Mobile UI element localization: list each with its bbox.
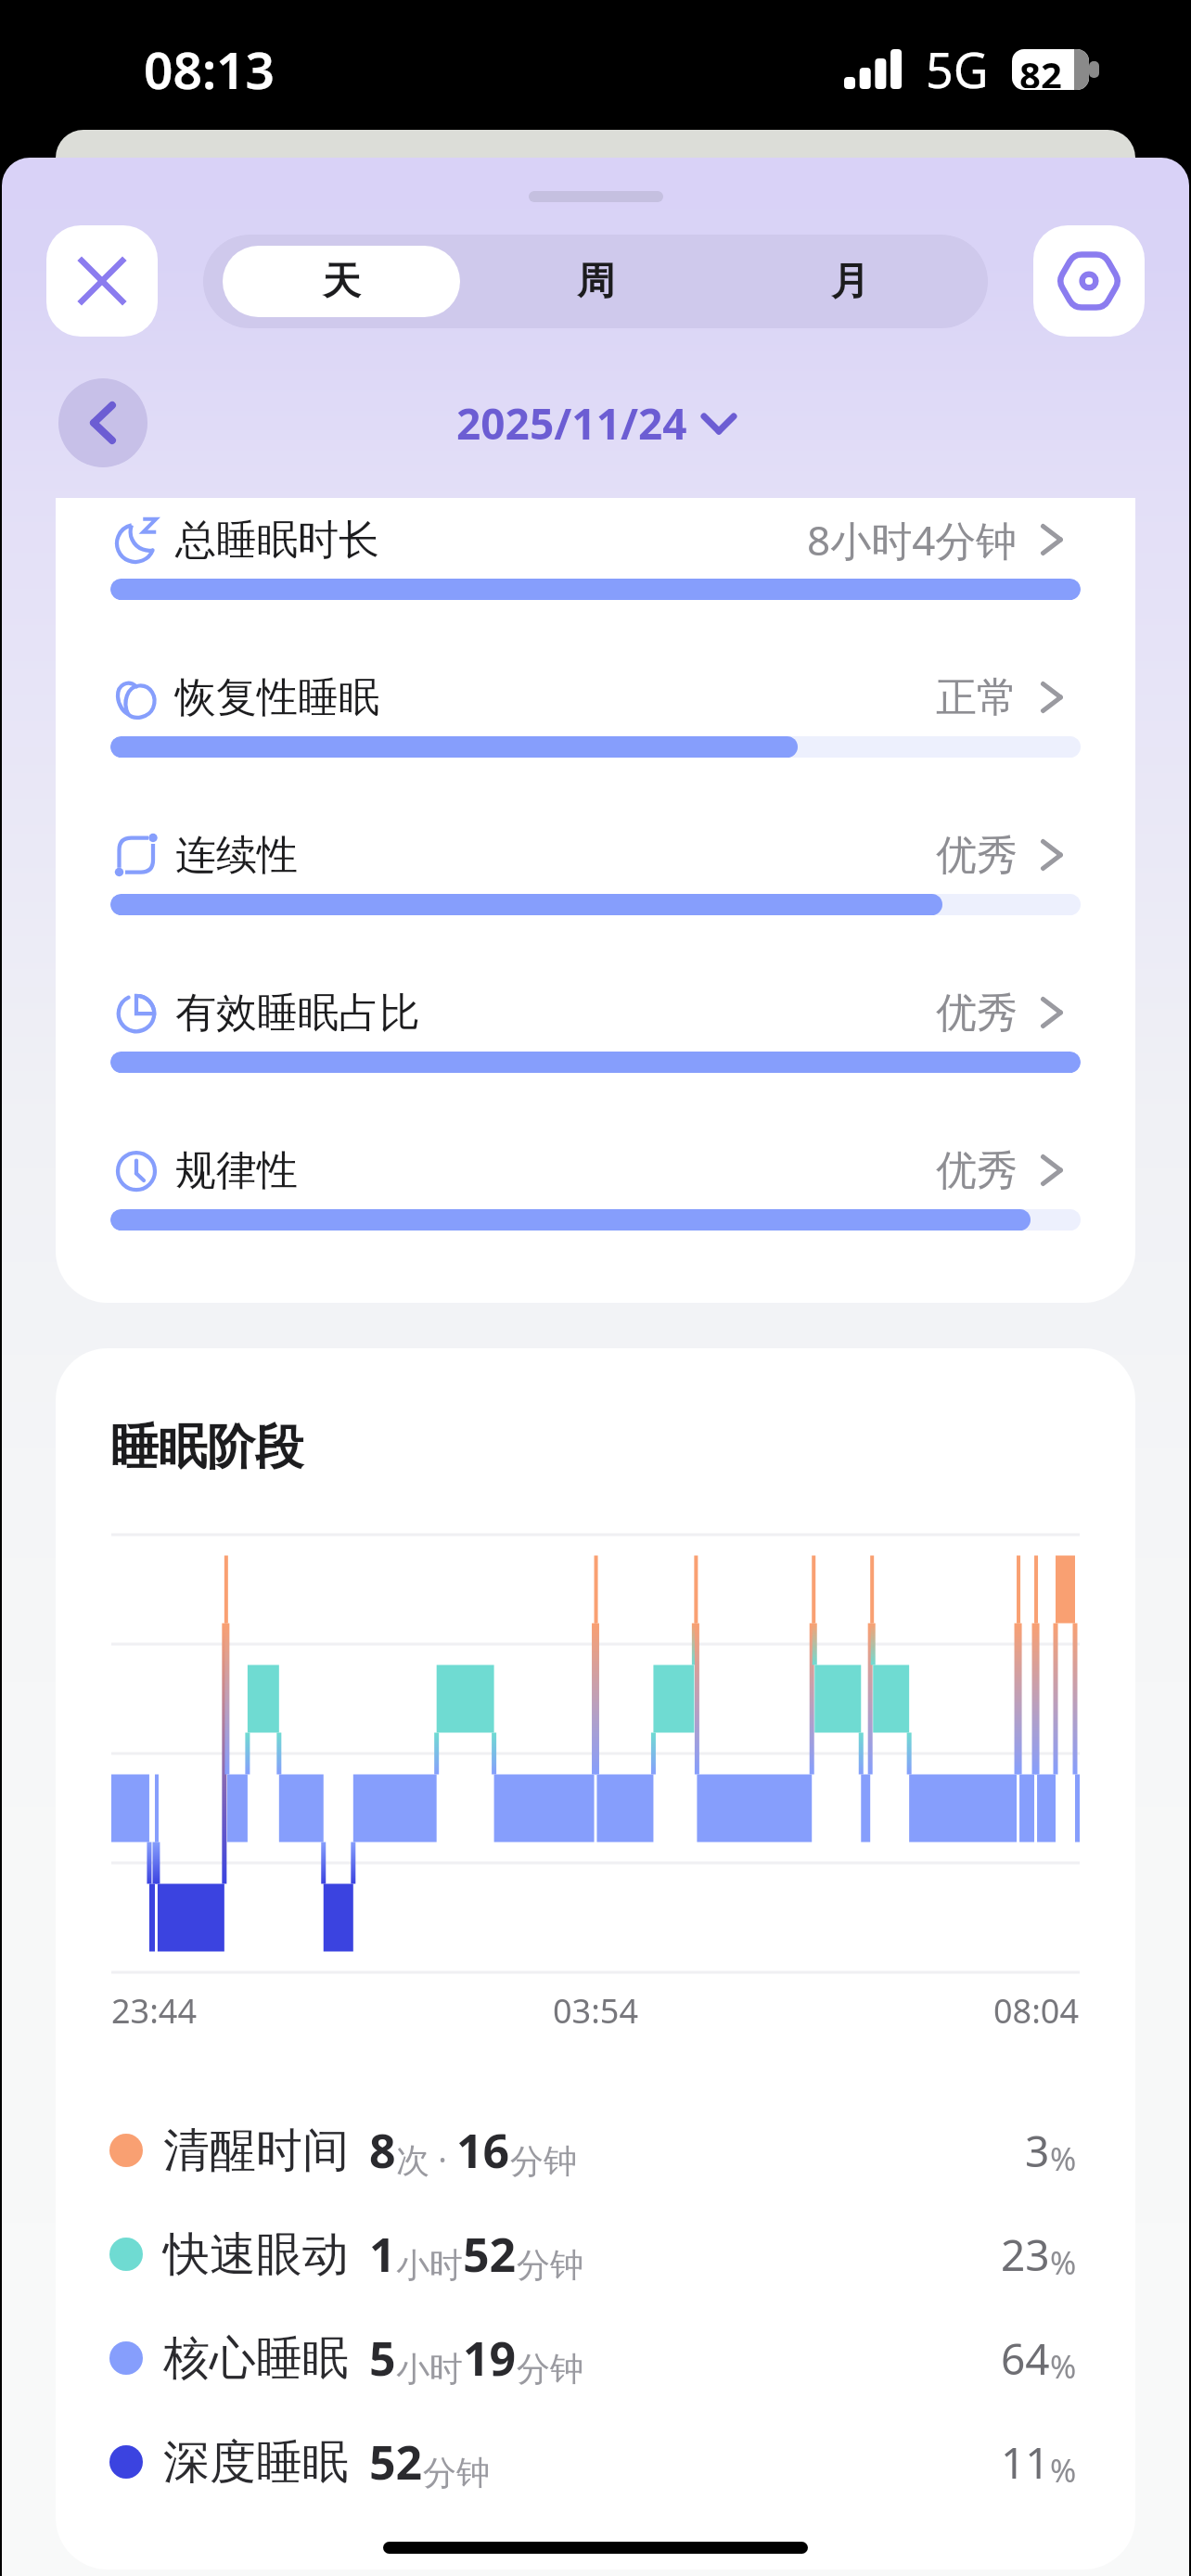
staticText: 优秀 (936, 830, 1018, 881)
staticText: 正常 (936, 672, 1018, 723)
staticText: 8 (369, 2119, 396, 2182)
button[interactable]: 有效睡眠占比 (56, 984, 1135, 1073)
staticText: 次 · (396, 2136, 456, 2182)
staticText: % (1050, 2241, 1077, 2284)
staticText: 3 (1025, 2122, 1050, 2180)
staticText: 深度睡眠 (163, 2433, 349, 2492)
button[interactable]: Close (46, 225, 158, 337)
staticText: 恢复性睡眠 (175, 672, 379, 723)
staticText: 23 (1001, 2225, 1050, 2284)
staticText: 64 (1001, 2329, 1050, 2388)
staticText: 5G (926, 36, 989, 102)
staticText: 优秀 (936, 1145, 1018, 1196)
button[interactable]: 2025/11/24 (456, 394, 736, 453)
staticText: 08:13 (144, 34, 275, 104)
staticText: 规律性 (175, 1145, 298, 1196)
staticText: 周 (577, 258, 615, 306)
staticText: 分钟 (517, 2244, 583, 2286)
staticText: 52 (463, 2223, 517, 2286)
staticText: % (1050, 2345, 1077, 2388)
staticText: 16 (456, 2119, 510, 2182)
staticText: 总睡眠时长 (175, 515, 379, 566)
staticText: 小时 (396, 2244, 463, 2286)
staticText: 8小时4分钟 (807, 512, 1018, 567)
button[interactable]: 快速眼动 (56, 2202, 1135, 2306)
staticText: 天 (323, 258, 361, 306)
staticText: 连续性 (175, 830, 298, 881)
staticText: 分钟 (510, 2140, 577, 2182)
staticText: 1 (369, 2223, 396, 2286)
button[interactable]: 天 (223, 246, 460, 317)
staticText: 52 (369, 2430, 423, 2493)
staticText: 2025/11/24 (456, 394, 687, 453)
button[interactable]: 月 (723, 246, 977, 317)
staticText: % (1050, 2137, 1077, 2180)
staticText: 08:04 (993, 1988, 1080, 2034)
staticText: 睡眠阶段 (110, 1417, 303, 1478)
staticText: 分钟 (423, 2452, 490, 2493)
button[interactable]: Previous day (58, 378, 147, 467)
staticText: 核心睡眠 (163, 2329, 349, 2388)
staticText: 快速眼动 (163, 2225, 349, 2284)
button[interactable]: 规律性 (56, 1141, 1135, 1231)
staticText: 5 (369, 2327, 396, 2390)
staticText: 19 (463, 2327, 517, 2390)
button[interactable]: 深度睡眠 (56, 2410, 1135, 2514)
button[interactable]: 核心睡眠 (56, 2306, 1135, 2410)
button[interactable]: 周 (468, 246, 723, 317)
staticText: 有效睡眠占比 (175, 988, 420, 1039)
staticText: 分钟 (517, 2348, 583, 2390)
button[interactable]: Settings (1033, 225, 1145, 337)
button[interactable]: 连续性 (56, 826, 1135, 915)
staticText: 82 (1019, 49, 1062, 88)
staticText: 23:44 (111, 1988, 198, 2034)
staticText: 小时 (396, 2348, 463, 2390)
staticText: 03:54 (553, 1988, 639, 2034)
staticText: 月 (831, 258, 869, 306)
button[interactable]: 总睡眠时长 (56, 511, 1135, 600)
button[interactable]: 清醒时间 (56, 2098, 1135, 2202)
staticText: 清醒时间 (163, 2122, 349, 2180)
staticText: % (1050, 2449, 1077, 2492)
button[interactable]: 恢复性睡眠 (56, 669, 1135, 758)
staticText: 11 (1001, 2433, 1050, 2492)
staticText: 优秀 (936, 988, 1018, 1039)
